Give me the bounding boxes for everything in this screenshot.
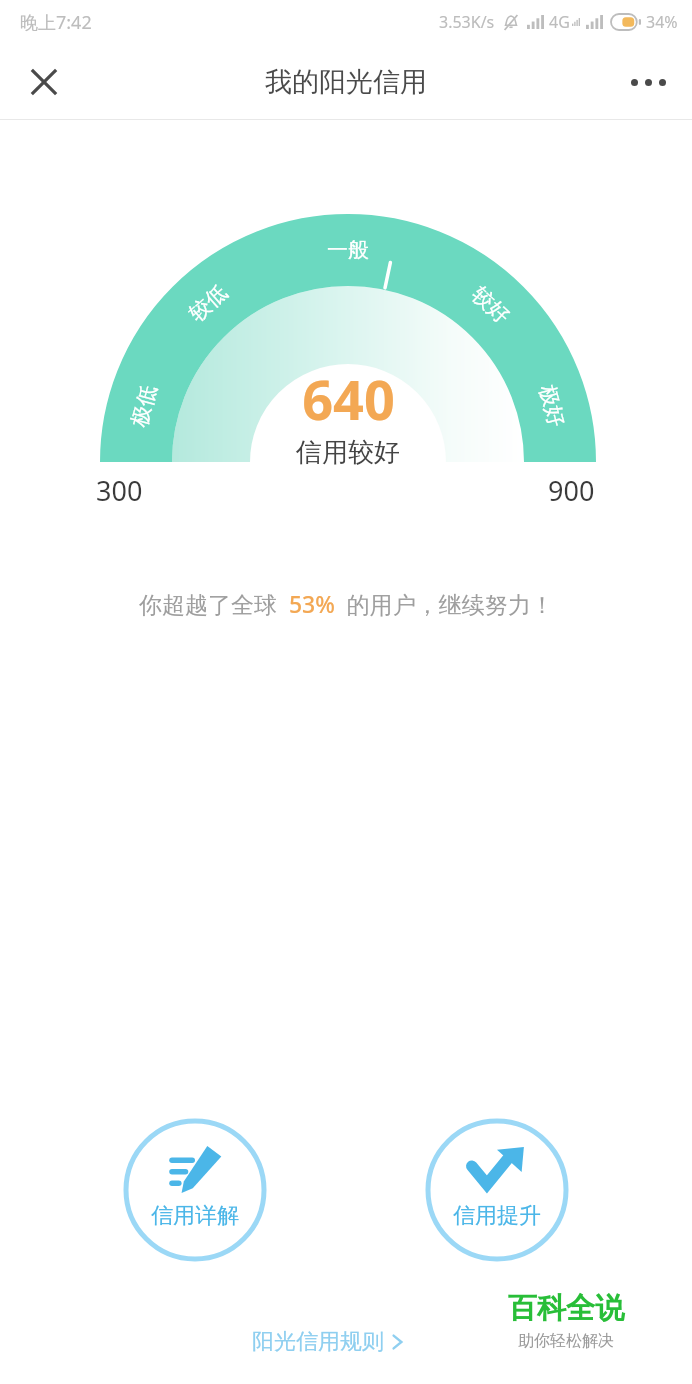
button[interactable]: 阳光信用规则 — [248, 1322, 408, 1362]
button[interactable]: 信用详解 — [123, 1118, 267, 1262]
staticText: 极低 — [126, 382, 162, 430]
staticText: 300 — [96, 472, 143, 509]
staticText: 较低 — [184, 279, 232, 327]
staticText: 较好 — [467, 281, 515, 329]
staticText: 640 — [302, 362, 395, 436]
button[interactable]: Close — [12, 50, 76, 114]
staticText: 3.53K/s — [439, 11, 495, 33]
staticText: 信用详解 — [151, 1202, 239, 1230]
staticText: 信用提升 — [453, 1202, 541, 1230]
staticText: 我的阳光信用 — [265, 65, 427, 99]
staticText: 信用较好 — [296, 436, 400, 469]
staticText: 一般 — [327, 237, 369, 263]
staticText: 阳光信用规则 — [252, 1328, 384, 1356]
staticText: 晚上7:42 — [20, 10, 92, 35]
staticText: 34% — [646, 11, 678, 33]
staticText: 助你轻松解决 — [518, 1331, 614, 1351]
staticText: 4G — [549, 11, 570, 33]
button[interactable]: 信用提升 — [425, 1118, 569, 1262]
staticText: 百科全说 — [508, 1290, 624, 1327]
staticText: 极好 — [534, 382, 570, 430]
staticText: 你超越了全球 53% 的用户，继续努力！ — [139, 588, 554, 619]
button[interactable]: More options — [616, 50, 680, 114]
staticText: 900 — [548, 472, 595, 509]
